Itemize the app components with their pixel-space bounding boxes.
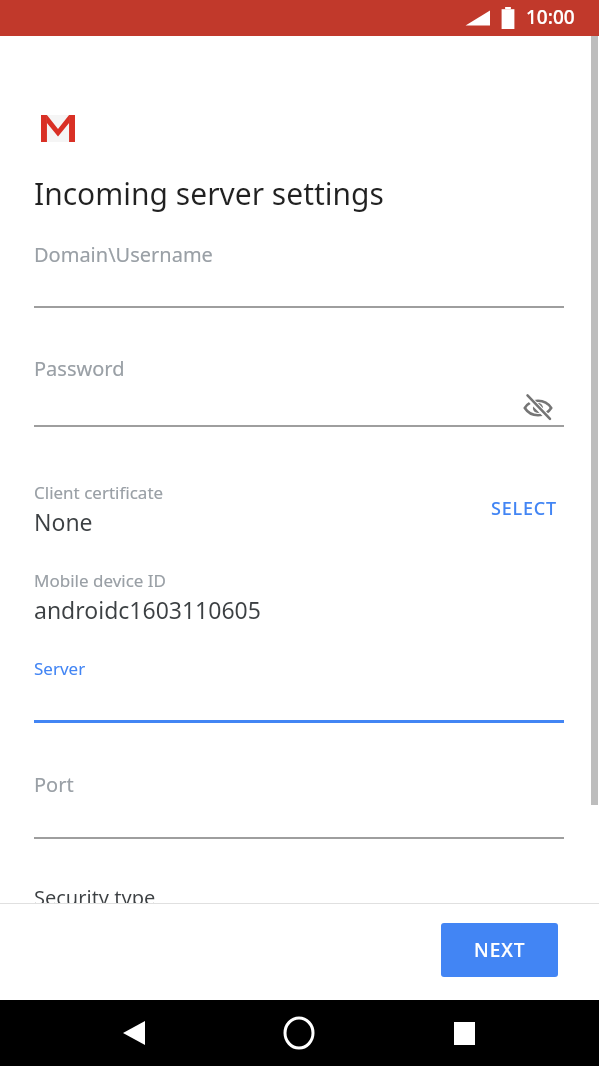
staticText: Port [34, 771, 74, 798]
button[interactable]: Back [104, 1003, 164, 1063]
button[interactable]: Password [0, 343, 599, 437]
staticText: Security type [34, 884, 156, 911]
staticText: SELECT [491, 496, 557, 521]
staticText: androidc1603110605 [34, 594, 261, 625]
staticText: Domain\Username [34, 241, 213, 268]
button[interactable]: Toggle password visibility [518, 388, 558, 428]
staticText: Mobile device ID [34, 569, 167, 592]
button[interactable]: SELECT [470, 488, 580, 528]
staticText: 10:00 [526, 4, 575, 30]
button[interactable]: Domain\Username [0, 229, 599, 318]
staticText: Server [34, 657, 86, 680]
button[interactable]: Port [0, 759, 599, 849]
staticText: None [34, 506, 93, 537]
staticText: Client certificate [34, 481, 164, 504]
button[interactable]: Recent apps [434, 1003, 494, 1063]
button[interactable]: Home [269, 1003, 329, 1063]
staticText: Password [34, 355, 125, 382]
staticText: Incoming server settings [34, 173, 384, 214]
button[interactable]: NEXT [441, 923, 558, 977]
staticText: NEXT [474, 937, 526, 963]
button[interactable]: Client certificate [0, 476, 599, 556]
